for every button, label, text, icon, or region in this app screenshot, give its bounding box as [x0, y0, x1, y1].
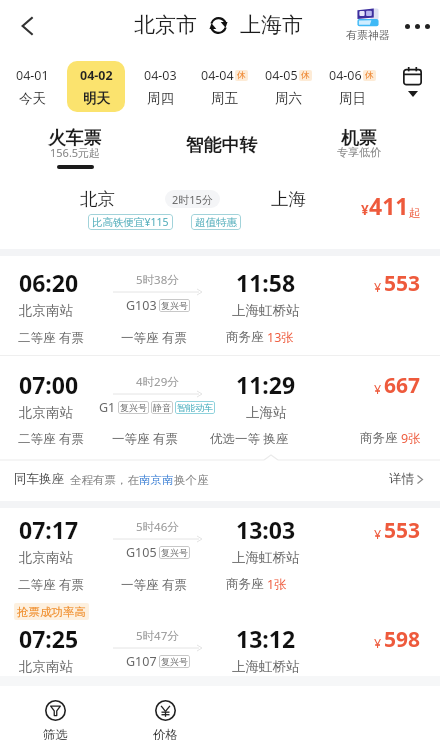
staticText: 详情 — [389, 471, 414, 487]
staticText: 5时47分 — [136, 628, 179, 644]
staticText: 13:12 — [236, 623, 296, 654]
staticText: 11:29 — [236, 369, 296, 400]
staticText: 复兴号 — [161, 547, 188, 558]
staticText: 一等座 有票 — [112, 430, 178, 447]
staticText: 起 — [409, 206, 421, 220]
staticText: 全程有票，在 — [70, 473, 139, 487]
staticText: 一等座 有票 — [121, 576, 187, 593]
staticText: 筛选 — [43, 727, 68, 740]
staticText: 04-03 — [144, 67, 177, 84]
staticText: 二等座 有票 — [18, 329, 84, 346]
staticText: 5时46分 — [136, 519, 179, 535]
staticText: 换个座 — [174, 473, 209, 487]
staticText: 周日 — [339, 90, 366, 107]
staticText: 同车换座 — [14, 471, 64, 487]
staticText: 二等座 有票 — [18, 576, 84, 593]
staticText: 一等座 有票 — [121, 329, 187, 346]
staticText: 上海虹桥站 — [232, 549, 300, 566]
staticText: 北京市 — [134, 12, 197, 38]
staticText: 上海虹桥站 — [232, 302, 300, 319]
staticText: G1 — [99, 399, 116, 416]
staticText: 04-04 — [201, 67, 234, 84]
staticText: 周六 — [275, 90, 302, 107]
staticText: 商务座 — [226, 329, 264, 345]
staticText: 复兴号 — [161, 300, 188, 311]
staticText: 156.5元起 — [50, 145, 101, 160]
staticText: 有票神器 — [346, 28, 390, 42]
staticText: 上海站 — [246, 404, 287, 421]
staticText: 11:58 — [236, 267, 296, 298]
staticText: 南京南 — [139, 473, 174, 487]
button[interactable]: 交换城市 — [209, 16, 228, 35]
button[interactable]: 07:00 — [0, 358, 440, 424]
staticText: 06:20 — [19, 267, 79, 298]
staticText: 上海虹桥站 — [232, 658, 300, 675]
button[interactable]: 选择日期 — [384, 52, 440, 112]
button[interactable]: 04-03 — [131, 61, 189, 112]
button[interactable]: 返回 — [5, 4, 49, 48]
button[interactable]: 04-06 — [323, 61, 381, 112]
staticText: 553 — [384, 269, 421, 298]
staticText: 598 — [384, 625, 421, 654]
button[interactable]: 北京 — [0, 176, 440, 242]
staticText: ¥ — [361, 201, 369, 219]
button[interactable]: 04-02 — [67, 61, 125, 112]
button[interactable]: 04-05 — [259, 61, 317, 112]
staticText: 智能动车 — [177, 402, 213, 413]
staticText: ¥ — [374, 526, 382, 543]
staticText: 北京南站 — [19, 658, 73, 675]
staticText: 13张 — [267, 329, 294, 346]
staticText: 休 — [365, 70, 374, 81]
staticText: 北京南站 — [19, 404, 73, 421]
staticText: G103 — [126, 297, 157, 314]
staticText: 上海 — [271, 188, 306, 210]
button[interactable]: 更多 — [396, 5, 438, 47]
button[interactable]: 筛选 — [19, 700, 91, 740]
staticText: 火车票 — [48, 127, 102, 149]
button[interactable]: 04-04 — [195, 61, 253, 112]
staticText: 今天 — [19, 90, 46, 107]
staticText: 超值特惠 — [195, 216, 237, 229]
button[interactable]: 智能中转 — [172, 112, 272, 174]
staticText: 抢票成功率高 — [17, 605, 86, 619]
staticText: 07:25 — [19, 623, 79, 654]
staticText: 07:17 — [19, 514, 79, 545]
staticText: 商务座 — [226, 576, 264, 592]
staticText: 休 — [301, 70, 310, 81]
staticText: 04-06 — [329, 67, 362, 84]
staticText: 周五 — [211, 90, 238, 107]
staticText: ¥ — [374, 279, 382, 296]
staticText: 667 — [384, 371, 421, 400]
staticText: ¥ — [374, 635, 382, 652]
button[interactable]: 机票 — [309, 112, 409, 174]
staticText: 北京 — [80, 188, 115, 210]
button[interactable]: 价格 — [129, 700, 201, 740]
staticText: 复兴号 — [120, 402, 147, 413]
button[interactable]: 07:17 — [0, 503, 440, 569]
staticText: 北京南站 — [19, 302, 73, 319]
staticText: 二等座 有票 — [18, 430, 84, 447]
button[interactable]: 火车票 — [25, 112, 125, 174]
staticText: ¥ — [374, 381, 382, 398]
button[interactable]: 07:25 — [0, 612, 440, 678]
staticText: G105 — [126, 544, 157, 561]
staticText: 04-01 — [16, 67, 49, 84]
staticText: 静音 — [153, 402, 171, 413]
button[interactable]: 06:20 — [0, 256, 440, 322]
button[interactable]: 有票神器 — [344, 8, 392, 42]
staticText: 9张 — [401, 430, 421, 447]
staticText: 上海市 — [240, 12, 303, 38]
staticText: 5时38分 — [136, 272, 179, 288]
button[interactable]: 同车换座 — [0, 455, 440, 492]
staticText: 价格 — [153, 727, 178, 740]
staticText: 智能中转 — [186, 134, 258, 156]
staticText: 411 — [369, 190, 409, 221]
staticText: 专享低价 — [337, 145, 381, 159]
button[interactable]: 04-01 — [3, 61, 61, 112]
staticText: 553 — [384, 516, 421, 545]
staticText: 休 — [237, 70, 246, 81]
staticText: G107 — [126, 653, 157, 670]
staticText: 04-02 — [80, 67, 113, 84]
staticText: 1张 — [267, 576, 287, 593]
staticText: 2时15分 — [172, 192, 213, 207]
